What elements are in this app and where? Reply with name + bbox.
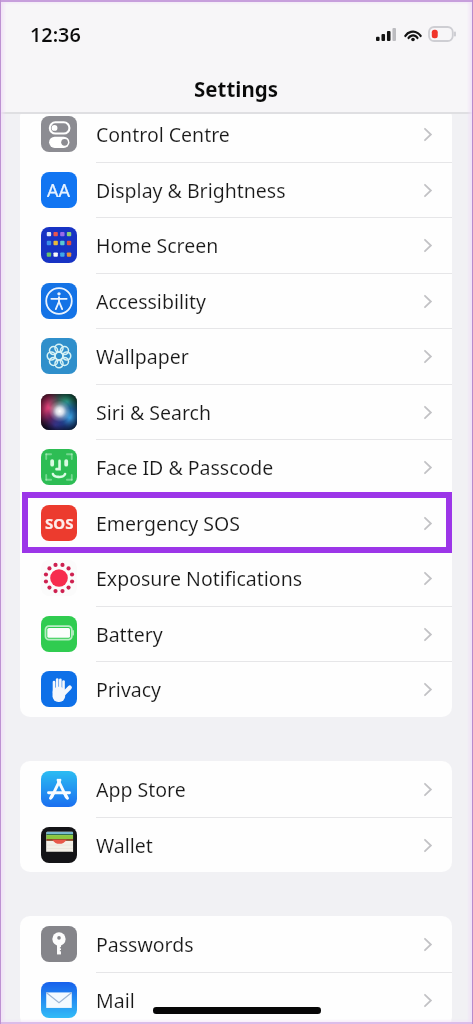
staticText: Display & Brightness [96,177,286,204]
button[interactable]: Privacy [20,661,452,717]
staticText: Wallet [96,832,153,859]
staticText: Accessibility [96,288,206,315]
staticText: Control Centre [96,121,230,148]
staticText: Home Screen [96,232,219,259]
staticText: Privacy [96,676,162,703]
staticText: App Store [96,776,186,803]
staticText: Mail [96,987,135,1014]
staticText: SOS [45,513,74,533]
button[interactable]: Battery [20,606,452,662]
button[interactable]: AA [20,162,452,218]
staticText: Settings [194,75,279,103]
staticText: Settings [194,75,279,103]
staticText: Emergency SOS [96,510,240,537]
button[interactable]: Wallet [20,817,452,872]
button[interactable]: Exposure Notifications [20,550,452,606]
button[interactable]: Control Centre [20,106,452,162]
button[interactable]: Home Screen [20,217,452,273]
staticText: 12:36 [30,21,81,48]
button[interactable]: Accessibility [20,273,452,329]
button[interactable]: Face ID & Passcode [20,439,452,495]
staticText: Wallpaper [96,343,189,370]
staticText: Battery [96,621,163,648]
button[interactable]: App Store [20,761,452,817]
button[interactable]: Siri & Search [20,384,452,440]
staticText: Exposure Notifications [96,565,303,592]
staticText: Siri & Search [96,399,211,426]
button[interactable]: SOS [20,495,452,551]
staticText: Face ID & Passcode [96,454,274,481]
button[interactable]: Passwords [20,916,452,972]
button[interactable]: Wallpaper [20,328,452,384]
staticText: Passwords [96,931,194,958]
staticText: AA [47,178,71,203]
button[interactable]: Mail [20,972,452,1024]
